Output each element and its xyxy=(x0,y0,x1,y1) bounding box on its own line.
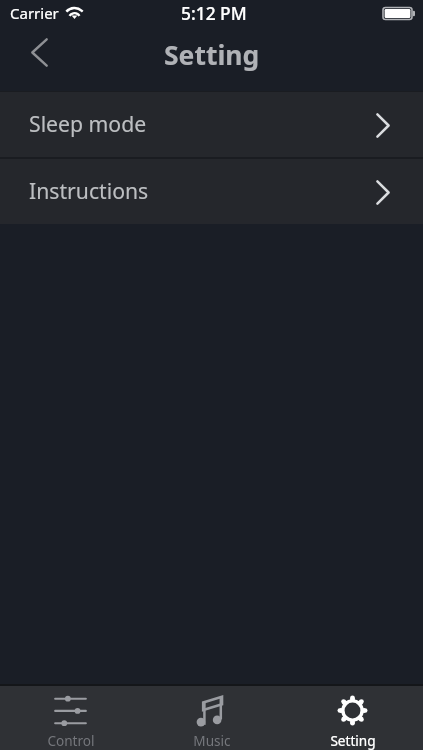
button[interactable]: Back xyxy=(0,26,60,91)
staticText: Music xyxy=(193,731,231,750)
button[interactable]: Instructions xyxy=(0,159,423,224)
button[interactable]: Control xyxy=(0,686,141,750)
staticText: Instructions xyxy=(29,176,149,205)
staticText: Setting xyxy=(330,731,376,750)
staticText: Control xyxy=(47,731,95,750)
button[interactable]: Setting xyxy=(282,686,423,750)
button[interactable]: Music xyxy=(141,686,282,750)
staticText: Setting xyxy=(164,37,260,73)
button[interactable]: Sleep mode xyxy=(0,92,423,157)
staticText: Carrier xyxy=(10,3,59,23)
staticText: Sleep mode xyxy=(29,109,147,138)
staticText: 5:12 PM xyxy=(181,1,247,25)
